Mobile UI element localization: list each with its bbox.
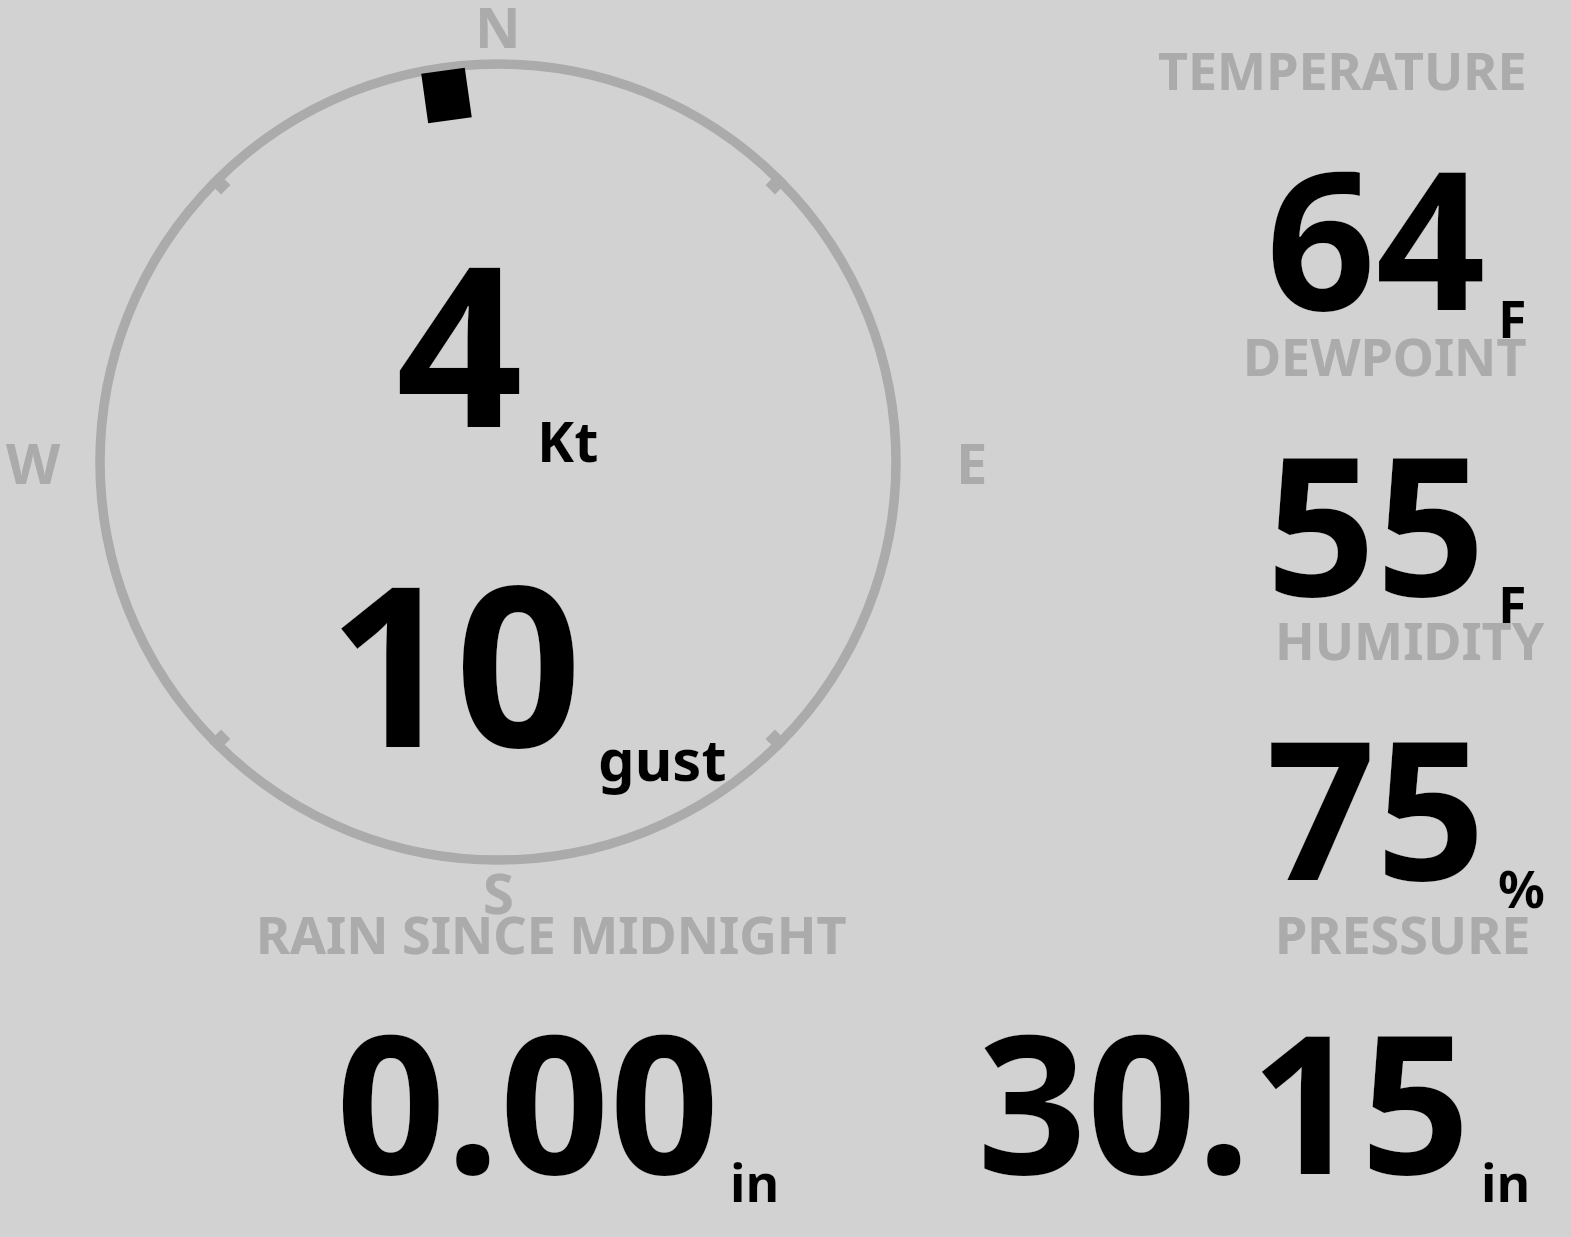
button[interactable]: DEWPOINT [1243,320,1527,653]
staticText: W [6,424,61,500]
staticText: Kt [537,402,599,478]
staticText: 0.00 [336,969,720,1231]
button[interactable]: 4 [396,190,599,492]
staticText: F [1498,282,1527,353]
button[interactable]: RAIN SINCE MIDNIGHT [256,898,847,1231]
staticText: in [1481,1146,1531,1217]
staticText: 10 [328,510,582,812]
staticText: S [483,854,514,930]
staticText: 55 [1266,391,1486,653]
staticText: 4 [396,190,523,492]
staticText: DEWPOINT [1243,320,1527,391]
staticText: RAIN SINCE MIDNIGHT [256,898,847,969]
staticText: E [956,424,988,500]
staticText: 30.15 [977,969,1471,1231]
staticText: PRESSURE [1275,898,1531,969]
button[interactable]: TEMPERATURE [1158,34,1527,367]
button[interactable]: 10 [328,510,727,812]
staticText: N [475,0,521,64]
staticText: 64 [1266,105,1486,367]
button[interactable]: Wind direction compass dial [52,16,944,908]
staticText: HUMIDITY [1275,604,1545,675]
staticText: % [1498,852,1545,923]
staticText: gust [598,719,727,798]
staticText: TEMPERATURE [1158,34,1527,105]
staticText: F [1498,568,1527,639]
button[interactable]: HUMIDITY [1266,604,1545,937]
button[interactable]: PRESSURE [977,898,1531,1231]
staticText: 75 [1266,675,1486,937]
staticText: in [730,1146,780,1217]
